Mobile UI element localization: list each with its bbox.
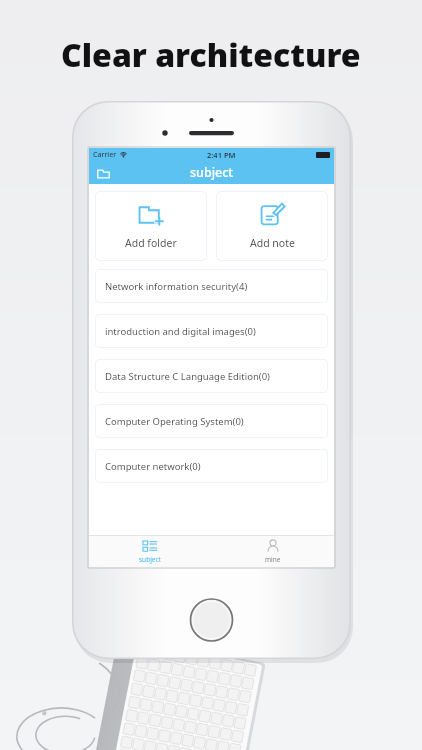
button[interactable]: Add folder [95, 191, 207, 261]
button[interactable]: subject [89, 536, 211, 567]
button[interactable]: Add note [216, 191, 328, 261]
staticText: Data Structure C Language Edition(0) [105, 370, 270, 383]
staticText: Carrier [93, 150, 117, 160]
staticText: mine [265, 555, 281, 564]
button[interactable]: Computer network(0) [95, 449, 328, 483]
staticText: Add note [250, 236, 295, 250]
staticText: subject [139, 555, 161, 564]
staticText: Computer Operating System(0) [105, 415, 244, 428]
staticText: Network information security(4) [105, 280, 248, 293]
button[interactable]: mine [211, 536, 334, 567]
staticText: Add folder [125, 236, 177, 250]
staticText: subject [190, 164, 234, 181]
button[interactable]: Folders [93, 163, 113, 183]
button[interactable]: Computer Operating System(0) [95, 404, 328, 438]
button[interactable]: Network information security(4) [95, 269, 328, 303]
button[interactable]: introduction and digital images(0) [95, 314, 328, 348]
staticText: introduction and digital images(0) [105, 325, 256, 338]
staticText: 2:41 PM [207, 150, 236, 160]
staticText: Clear architecture [61, 33, 361, 77]
button[interactable]: Data Structure C Language Edition(0) [95, 359, 328, 393]
staticText: Computer network(0) [105, 460, 201, 473]
